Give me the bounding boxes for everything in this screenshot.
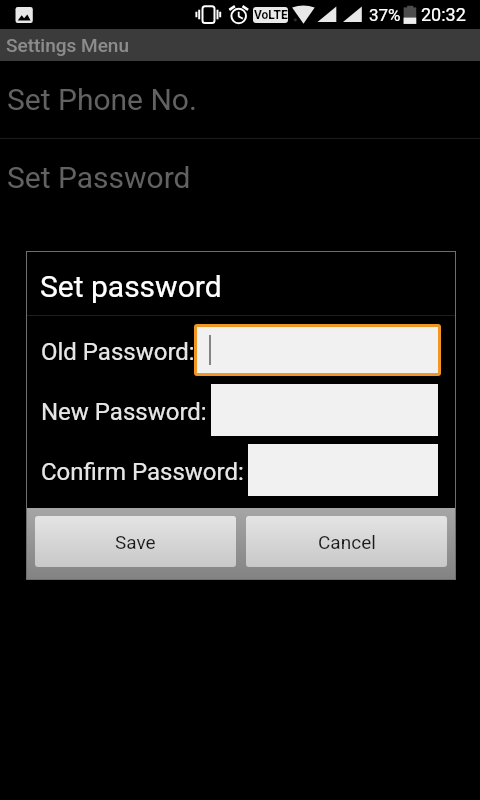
- staticText: Save: [115, 531, 156, 553]
- staticText: Set Phone No.: [7, 82, 197, 117]
- staticText: Settings Menu: [6, 34, 129, 56]
- staticText: Confirm Password:: [41, 458, 244, 486]
- button[interactable]: Cancel: [246, 516, 447, 567]
- button[interactable]: Save: [35, 516, 236, 567]
- staticText: 37%: [369, 5, 401, 25]
- staticText: Old Password:: [41, 338, 195, 366]
- button[interactable]: [194, 324, 441, 376]
- staticText: VoLTE: [254, 8, 288, 22]
- staticText: Cancel: [318, 531, 376, 553]
- staticText: New Password:: [41, 398, 207, 426]
- button[interactable]: Set Password: [0, 139, 480, 215]
- button[interactable]: Set Phone No.: [0, 61, 480, 138]
- staticText: Set password: [40, 269, 222, 304]
- staticText: Set Password: [7, 160, 191, 195]
- staticText: 20:32: [421, 4, 466, 25]
- other: Screenshot captured: [0, 0, 36, 29]
